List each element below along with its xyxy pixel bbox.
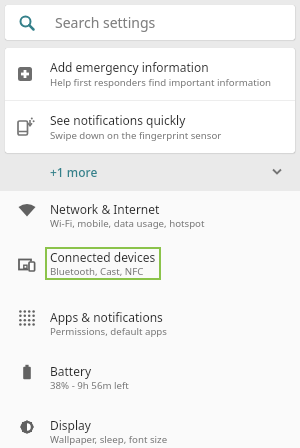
- button[interactable]: Battery: [0, 353, 300, 407]
- staticText: Connected devices: [50, 249, 156, 265]
- staticText: See notifications quickly: [50, 112, 186, 128]
- staticText: Add emergency information: [50, 59, 209, 75]
- button[interactable]: Connected devices: [0, 245, 300, 299]
- staticText: 38% - 9h 56m left: [50, 379, 129, 392]
- button[interactable]: Network & Internet: [0, 191, 300, 245]
- button[interactable]: Add emergency information: [5, 48, 295, 100]
- staticText: Wallpaper, sleep, font size: [50, 433, 168, 446]
- staticText: Apps & notifications: [50, 309, 163, 325]
- staticText: Battery: [50, 363, 92, 379]
- button[interactable]: Search settings: [5, 5, 295, 40]
- button[interactable]: See notifications quickly: [5, 101, 295, 153]
- staticText: Swipe down on the fingerprint sensor: [50, 129, 222, 142]
- staticText: Bluetooth, Cast, NFC: [50, 265, 144, 278]
- staticText: +1 more: [50, 164, 98, 180]
- staticText: Help first responders find important inf…: [50, 76, 272, 89]
- button[interactable]: Display: [0, 407, 300, 448]
- staticText: Permissions, default apps: [50, 325, 167, 338]
- staticText: Network & Internet: [50, 201, 160, 217]
- staticText: Wi-Fi, mobile, data usage, hotspot: [50, 217, 205, 230]
- button[interactable]: +1 more: [0, 153, 300, 191]
- staticText: Search settings: [55, 13, 156, 32]
- button[interactable]: Apps & notifications: [0, 299, 300, 353]
- staticText: Display: [50, 417, 91, 433]
